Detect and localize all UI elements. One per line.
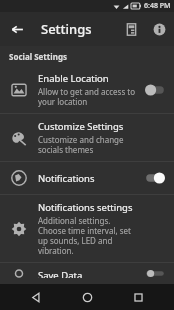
button[interactable]: Recents (123, 284, 153, 310)
staticText: Enable Location (38, 72, 109, 85)
button[interactable]: Off (144, 83, 166, 97)
button[interactable]: Back (21, 284, 51, 310)
staticText: Additional settings. Choose time interva… (38, 215, 138, 256)
staticText: 6:48 PM (144, 1, 171, 11)
staticText: Settings (41, 20, 92, 38)
staticText: Allow to get and access to your location (38, 86, 138, 107)
button[interactable]: Notifications settings (0, 195, 174, 262)
staticText: Customize Settings (38, 120, 124, 133)
button[interactable]: Off (144, 269, 166, 278)
staticText: Notifications settings (38, 201, 133, 214)
button[interactable]: Customize Settings (0, 114, 174, 161)
button[interactable]: Home (72, 284, 102, 310)
button[interactable]: Back (0, 12, 34, 46)
staticText: Customize and change socials themes (38, 134, 138, 155)
staticText: Social Settings (9, 51, 67, 62)
button[interactable]: Enable Location (0, 66, 174, 113)
button[interactable]: On (144, 171, 166, 185)
button[interactable]: Info (145, 15, 173, 43)
staticText: Notifications (38, 172, 95, 185)
button[interactable]: Notifications (0, 162, 174, 194)
staticText: Save Data (38, 269, 83, 278)
button[interactable]: Save Data (0, 263, 174, 284)
button[interactable]: Storage (117, 15, 145, 43)
